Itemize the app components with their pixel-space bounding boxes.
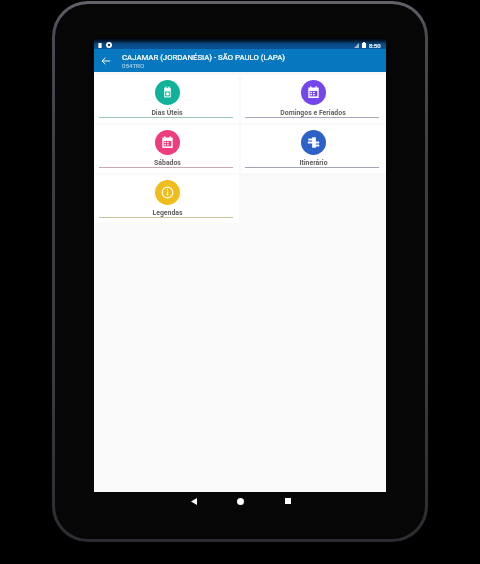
staticText: Domingos e Feriados (280, 109, 346, 117)
staticText: Legendas (152, 209, 183, 217)
staticText: Itinerário (299, 159, 328, 167)
staticText: CAJAMAR (JORDANÉSIA) - SÃO PAULO (LAPA) (122, 53, 285, 62)
button[interactable]: Itinerário (241, 125, 385, 173)
staticText: Dias Úteis (151, 109, 183, 117)
button[interactable]: Back (170, 492, 217, 510)
button[interactable]: Sábados (95, 125, 239, 173)
button[interactable]: Back (94, 49, 118, 72)
button[interactable]: Legendas (95, 175, 239, 223)
staticText: 054TRO (122, 62, 145, 69)
button[interactable]: Dias Úteis (95, 75, 239, 123)
staticText: Sábados (154, 159, 181, 167)
button[interactable]: Domingos e Feriados (241, 75, 385, 123)
button[interactable]: Recents (264, 492, 311, 510)
staticText: 8:50 (369, 42, 381, 48)
button[interactable]: Home (217, 492, 264, 510)
